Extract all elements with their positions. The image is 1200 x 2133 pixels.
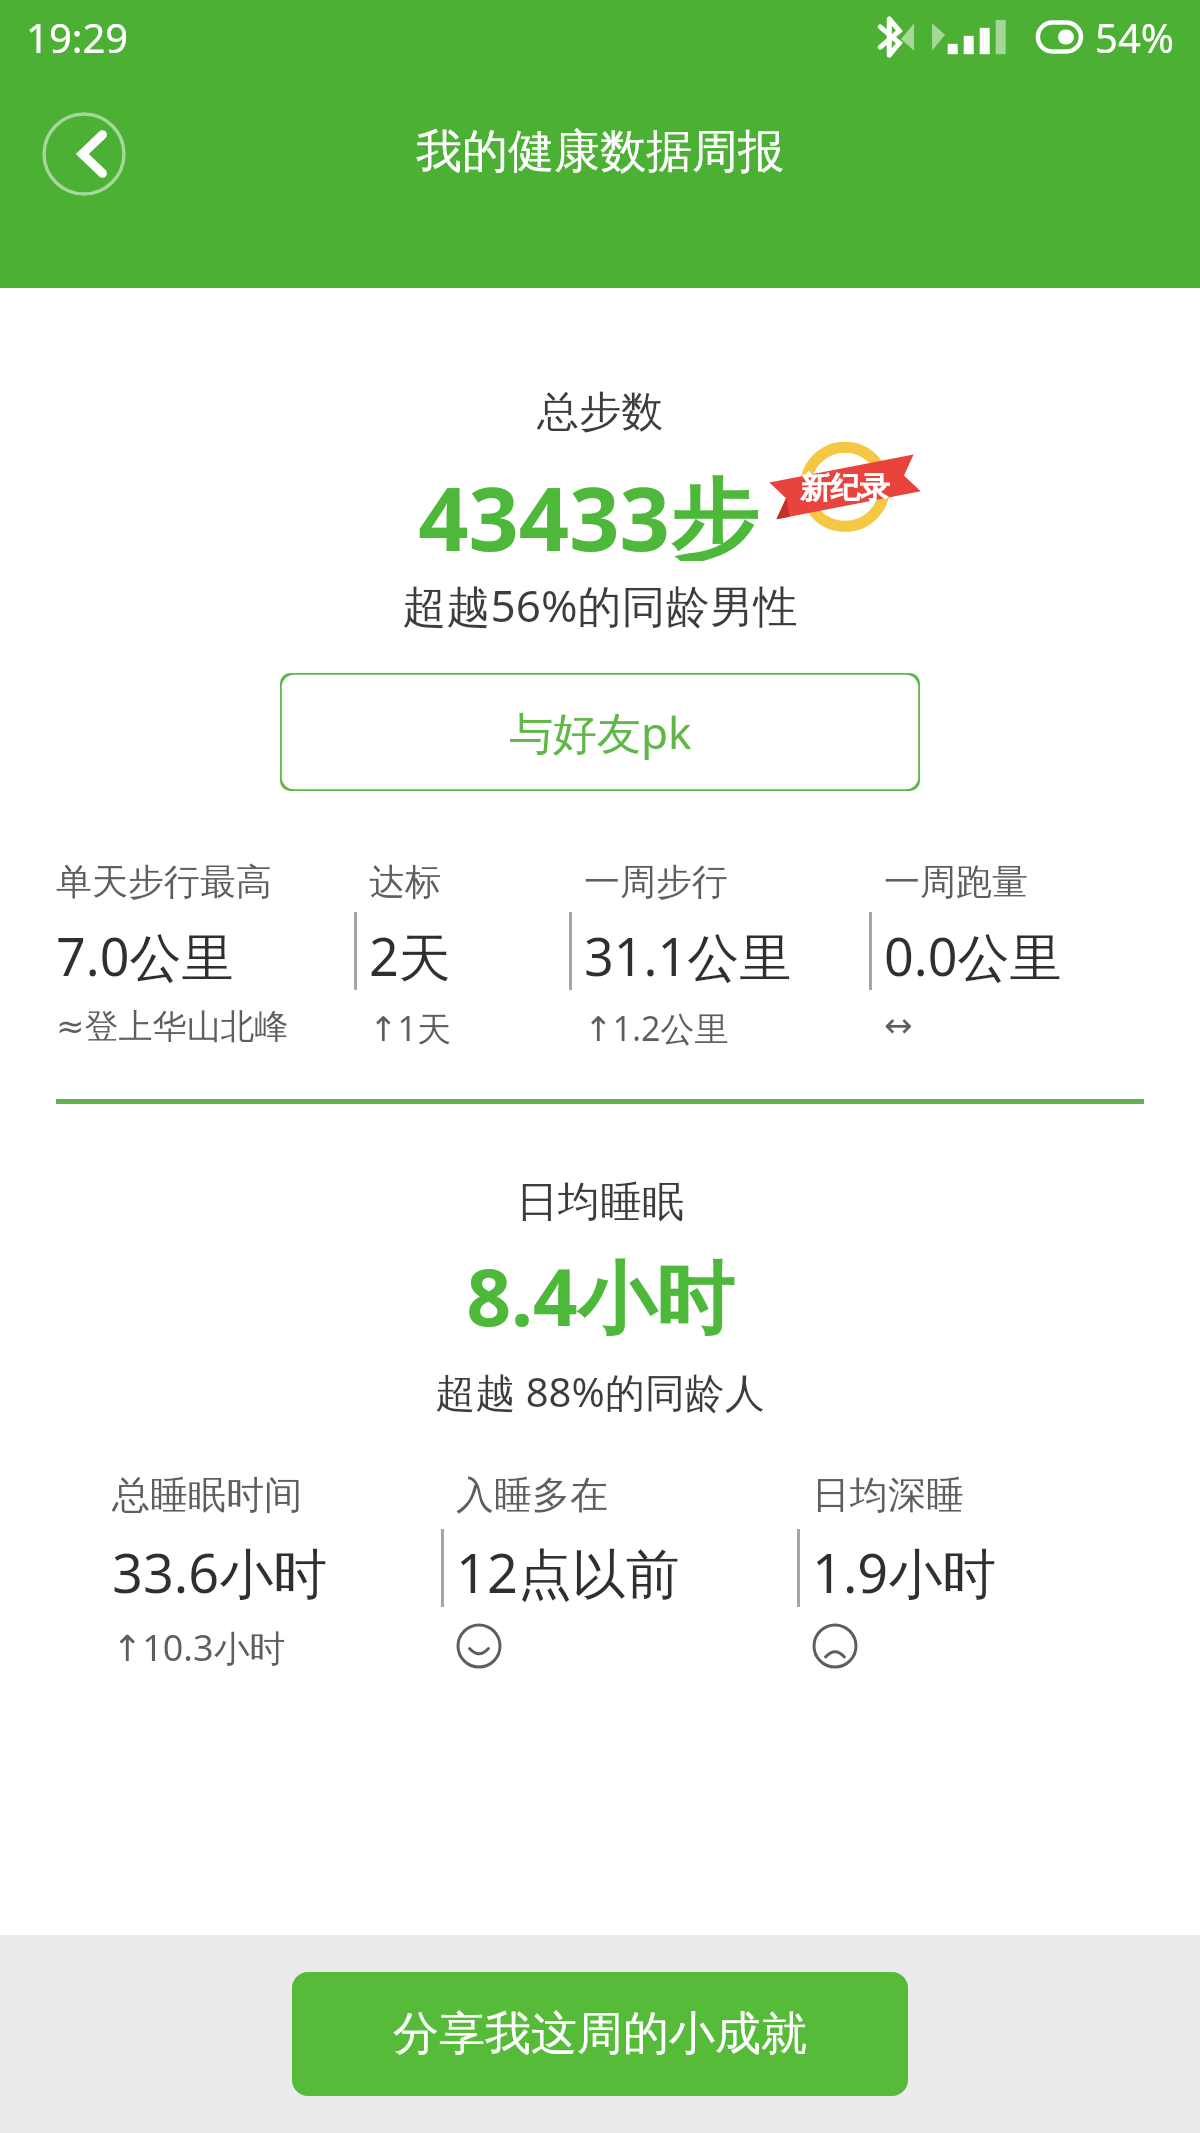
staticText: 总睡眠时间 — [112, 1471, 302, 1519]
staticText: 总步数 — [0, 386, 1200, 439]
staticText: ↑1.2公里 — [584, 1005, 729, 1051]
staticText: 一周跑量 — [884, 859, 1028, 904]
staticText: 日均深睡 — [812, 1471, 964, 1519]
staticText: 0.0公里 — [884, 920, 1062, 991]
staticText: ↑1天 — [369, 1005, 451, 1051]
staticText: 12点以前 — [456, 1535, 680, 1609]
staticText: 超越 88%的同龄人 — [0, 1364, 1200, 1419]
staticText: 31.1公里 — [584, 920, 792, 991]
staticText: ≈登上华山北峰 — [56, 1005, 289, 1048]
staticText: 入睡多在 — [456, 1471, 608, 1519]
button[interactable]: Back — [42, 112, 126, 196]
staticText: 超越56%的同龄男性 — [0, 575, 1200, 635]
staticText: 8.4小时 — [0, 1243, 1200, 1350]
staticText: 日均睡眠 — [0, 1176, 1200, 1229]
staticText: 我的健康数据周报 — [416, 123, 784, 181]
staticText: 54% — [1095, 10, 1174, 64]
button[interactable]: 与好友pk — [280, 673, 920, 791]
staticText: 33.6小时 — [112, 1535, 328, 1609]
staticText: 7.0公里 — [56, 920, 234, 991]
staticText: 与好友pk — [509, 702, 692, 762]
staticText: 2天 — [369, 920, 451, 991]
staticText: 达标 — [369, 859, 441, 904]
staticText: 新纪录 — [800, 469, 890, 507]
staticText: 单天步行最高 — [56, 859, 272, 904]
staticText: ↔ — [884, 1005, 913, 1045]
staticText: 1.9小时 — [812, 1535, 997, 1609]
staticText: 一周步行 — [584, 859, 728, 904]
staticText: 分享我这周的小成就 — [393, 2005, 807, 2063]
staticText: 19:29 — [26, 10, 129, 64]
staticText: ↑10.3小时 — [112, 1623, 286, 1672]
staticText: 43433步 — [418, 457, 758, 561]
button[interactable]: 分享我这周的小成就 — [292, 1972, 908, 2096]
